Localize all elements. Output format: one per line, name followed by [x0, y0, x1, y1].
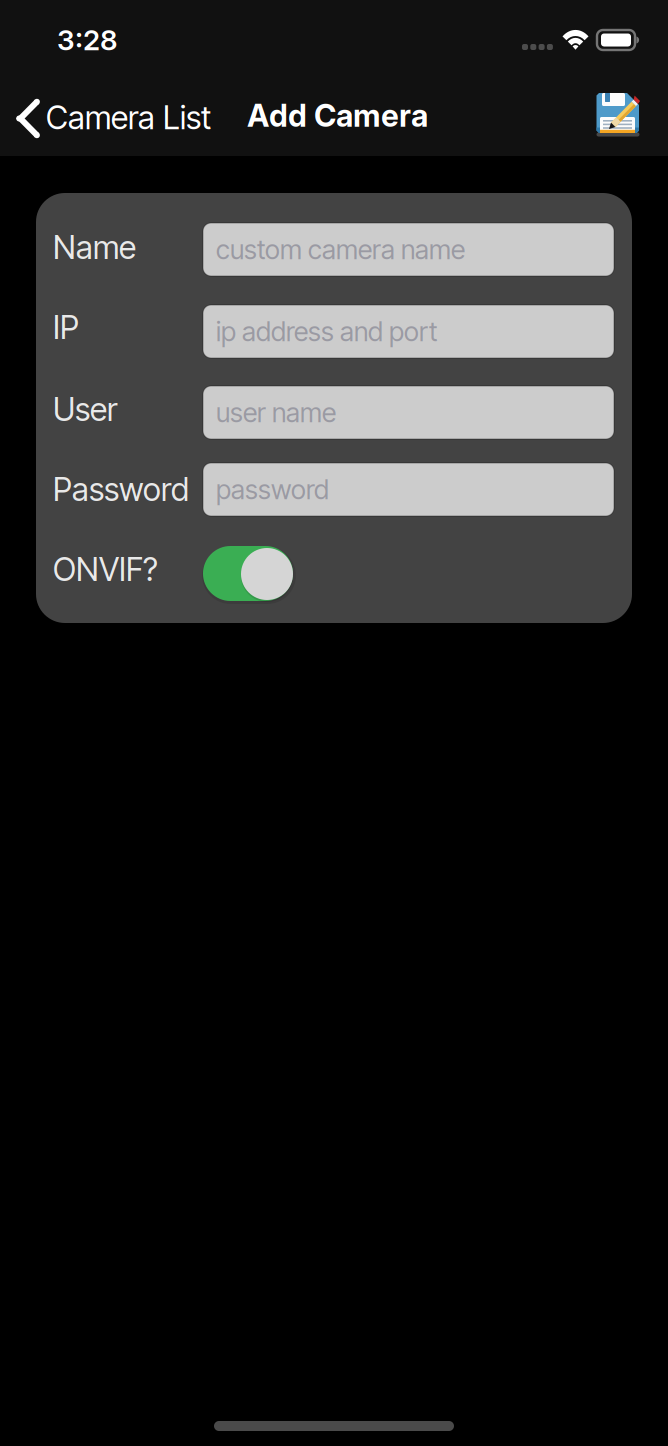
staticText: IP	[53, 308, 79, 347]
button[interactable]: ONVIF, on	[203, 546, 293, 601]
button[interactable]: user name	[203, 386, 614, 439]
staticText: Name	[53, 228, 136, 267]
staticText: ip address and port	[216, 315, 437, 348]
staticText: Password	[53, 470, 189, 509]
staticText: user name	[216, 396, 336, 429]
button[interactable]: Camera List	[0, 75, 227, 156]
staticText: Add Camera	[247, 97, 428, 134]
button[interactable]: custom camera name	[203, 223, 614, 276]
button[interactable]: Save	[580, 75, 656, 157]
button[interactable]: ip address and port	[203, 305, 614, 358]
button[interactable]: password	[203, 463, 614, 516]
staticText: Camera List	[46, 98, 211, 137]
staticText: 3:28	[57, 23, 118, 57]
staticText: User	[53, 390, 117, 429]
staticText: password	[216, 473, 329, 506]
staticText: ONVIF?	[53, 550, 158, 589]
staticText: custom camera name	[216, 233, 465, 266]
